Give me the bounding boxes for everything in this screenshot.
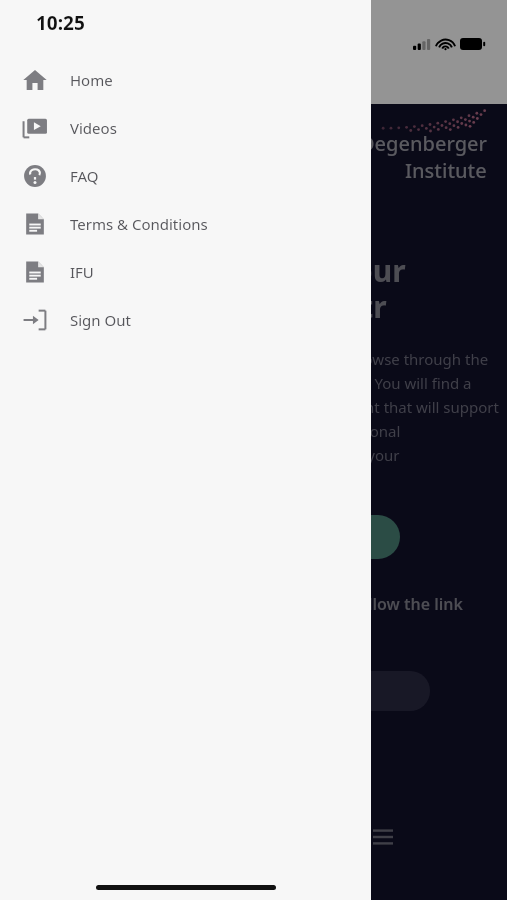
button[interactable]: Open navigation menu [366,820,400,854]
staticText: Sign Out [70,310,131,330]
button[interactable]: Videos [0,104,371,152]
staticText: Welcome to our Member Centr [170,250,507,327]
staticText: 10:25 [36,10,85,36]
staticText: Please take a moment to browse through t… [170,349,507,489]
staticText: FAQ [70,166,99,186]
button[interactable]: Terms & Conditions [0,200,371,248]
button[interactable]: FAQ [0,152,371,200]
button[interactable] [330,671,430,711]
staticText: Terms & Conditions [70,214,208,234]
staticText: IFU [70,262,94,282]
button[interactable]: IFU [0,248,371,296]
button[interactable]: Explore [290,515,400,559]
staticText: Institute [405,157,487,184]
staticText: To view the Privacy Policy follow the li… [150,593,507,637]
button[interactable]: Sign Out [0,296,371,344]
button[interactable]: Home [0,56,371,104]
staticText: Degenberger [360,130,487,157]
staticText: Home [70,70,113,90]
staticText: Videos [70,118,117,138]
